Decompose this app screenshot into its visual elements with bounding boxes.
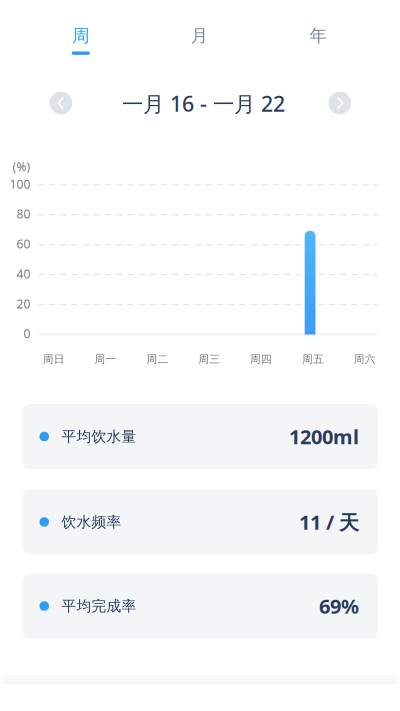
staticText: 周一 [95, 353, 117, 366]
button[interactable]: Next week [328, 92, 351, 114]
staticText: 周三 [198, 353, 220, 366]
staticText: 月 [191, 25, 208, 46]
staticText: 周日 [43, 353, 65, 366]
staticText: 周六 [354, 353, 376, 366]
staticText: 100 [9, 176, 30, 192]
staticText: 一月 16 - 一月 22 [122, 89, 285, 118]
staticText: 20 [16, 296, 30, 312]
button[interactable]: Previous week [50, 92, 72, 114]
button[interactable]: 周 [41, 25, 121, 55]
staticText: 周四 [250, 353, 272, 366]
staticText: 周 [72, 25, 89, 46]
button[interactable]: 年 [278, 25, 358, 55]
staticText: 周五 [302, 353, 324, 366]
staticText: 周二 [146, 353, 168, 366]
staticText: 60 [16, 236, 30, 252]
staticText: 11 / 天 [299, 509, 359, 535]
staticText: 69% [319, 593, 359, 619]
staticText: 80 [16, 206, 30, 222]
button[interactable]: 月 [159, 25, 239, 55]
button[interactable]: 饮水频率 [22, 489, 378, 554]
staticText: 饮水频率 [61, 513, 121, 531]
staticText: 年 [309, 25, 326, 46]
staticText: 平均饮水量 [61, 427, 136, 445]
staticText: 1200ml [289, 423, 359, 450]
button[interactable]: 平均完成率 [22, 573, 378, 638]
staticText: 0 [23, 326, 30, 342]
staticText: 平均完成率 [61, 597, 136, 615]
button[interactable]: 平均饮水量 [22, 404, 378, 469]
staticText: (%) [13, 159, 31, 174]
staticText: 40 [16, 266, 30, 282]
